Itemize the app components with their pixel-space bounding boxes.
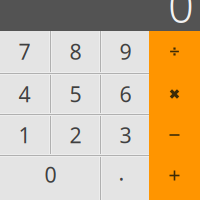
staticText: 8 (69, 37, 81, 66)
button[interactable]: 5 (52, 75, 99, 113)
button[interactable]: 0 (0, 157, 99, 200)
button[interactable]: Multiply (149, 75, 200, 113)
button[interactable]: 6 (102, 75, 149, 113)
button[interactable]: 8 (52, 31, 99, 72)
button[interactable]: Plus (149, 157, 200, 200)
staticText: 6 (119, 80, 131, 108)
button[interactable]: Divide (149, 31, 200, 72)
staticText: . (118, 158, 124, 187)
button[interactable]: . (102, 157, 149, 200)
staticText: 7 (18, 37, 30, 66)
staticText: 0 (44, 160, 56, 189)
button[interactable]: 3 (102, 116, 149, 154)
staticText: 1 (18, 121, 30, 149)
button[interactable]: 4 (0, 75, 49, 113)
button[interactable]: Minus (149, 116, 200, 154)
staticText: 5 (69, 80, 81, 108)
staticText: 3 (119, 121, 131, 149)
staticText: 9 (119, 37, 131, 66)
button[interactable]: 7 (0, 31, 49, 72)
staticText: 2 (69, 121, 81, 149)
staticText: 4 (18, 80, 30, 108)
button[interactable]: 1 (0, 116, 49, 154)
staticText: 0 (168, 0, 194, 36)
button[interactable]: 2 (52, 116, 99, 154)
button[interactable]: 9 (102, 31, 149, 72)
